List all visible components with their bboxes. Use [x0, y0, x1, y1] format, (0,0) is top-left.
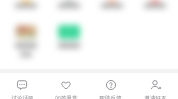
staticText: 问答悬赏	[55, 95, 78, 99]
staticText: 帮助反馈	[99, 95, 122, 99]
button[interactable]: Discussions	[0, 73, 44, 99]
button[interactable]: Q and A	[44, 73, 88, 99]
staticText: 讨论话题	[11, 95, 34, 99]
staticText: 邀请好友	[144, 95, 167, 99]
button[interactable]: Invite friends	[133, 73, 178, 99]
button[interactable]: Help and feedback	[88, 73, 133, 99]
